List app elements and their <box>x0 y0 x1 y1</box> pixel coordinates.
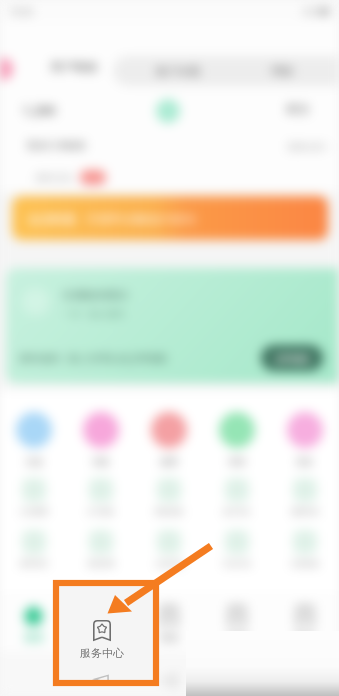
staticText: 缴费 <box>160 456 178 467</box>
staticText: 消息 <box>159 631 179 644</box>
staticText: 开通享专属权益与折扣 <box>86 212 196 226</box>
other: 服务中心 <box>92 605 110 626</box>
button[interactable]: 账户余额 <box>113 56 339 86</box>
button[interactable]: 服务中心 <box>67 596 135 652</box>
button[interactable]: 社区互动 <box>203 530 271 568</box>
staticText: 明细 <box>271 64 293 78</box>
button[interactable]: 会员特惠 <box>12 196 328 240</box>
staticText: 服务中心 <box>80 646 124 660</box>
button[interactable]: 充值 <box>0 412 67 467</box>
button[interactable]: 健康管理 <box>271 478 339 516</box>
button[interactable]: 专属服务顾问 <box>6 268 339 383</box>
other: 我的 <box>296 605 314 626</box>
button[interactable]: 娱乐专区 <box>203 478 271 516</box>
staticText: 1,280 <box>22 101 56 119</box>
staticText: 我的订单服务 <box>27 139 87 152</box>
staticText: 转账 <box>92 456 110 467</box>
staticText: 理财 <box>228 456 246 467</box>
other: 服务中心 <box>93 620 111 641</box>
button[interactable]: 公益活动 <box>135 530 203 568</box>
staticText: 专属服务顾问 <box>62 288 128 302</box>
button[interactable]: 购物优惠 <box>135 478 203 516</box>
button[interactable]: 缴费 <box>135 412 203 467</box>
button[interactable]: 转账 <box>67 412 135 467</box>
staticText: 会员特惠 <box>28 211 76 226</box>
button[interactable]: 消息 <box>135 596 203 652</box>
staticText: 立即领取 <box>274 353 310 364</box>
staticText: 用户昵称 <box>50 59 98 74</box>
button[interactable]: 教育培训 <box>0 530 67 568</box>
staticText: 一对一贴心服务 <box>62 308 125 319</box>
staticText: 查看全部 > <box>287 140 331 152</box>
staticText: 首页 <box>24 631 44 644</box>
staticText: 更多 <box>296 456 314 467</box>
other: 首页 <box>23 604 44 626</box>
button[interactable]: 在线客服 <box>271 530 339 568</box>
button[interactable]: 更多 <box>271 412 339 467</box>
staticText: 账户余额 <box>156 64 200 78</box>
staticText: 服务中心 <box>81 631 121 644</box>
button[interactable]: 出行服务 <box>67 478 135 516</box>
staticText: 生活缴费 <box>20 507 48 516</box>
button[interactable] <box>0 58 13 80</box>
staticText: 积分 <box>286 101 310 116</box>
button[interactable]: 首页 <box>0 596 67 652</box>
staticText: 限时福利 · 新人专享礼包立即领取 <box>20 351 168 365</box>
staticText: 在线客服 <box>291 559 319 568</box>
button[interactable]: 发现 <box>203 596 271 652</box>
other: 消息 <box>160 605 178 626</box>
staticText: 公益活动 <box>155 559 183 568</box>
button[interactable]: 服务中心 <box>55 585 149 683</box>
other: 发现 <box>228 605 246 626</box>
button[interactable]: 立即领取 <box>261 345 323 371</box>
button[interactable]: 理财 <box>203 412 271 467</box>
staticText: 充值 <box>25 456 43 467</box>
button[interactable]: 生活缴费 <box>0 478 67 516</box>
button[interactable]: 保险保障 <box>67 530 135 568</box>
button[interactable]: 我的 <box>271 596 339 652</box>
